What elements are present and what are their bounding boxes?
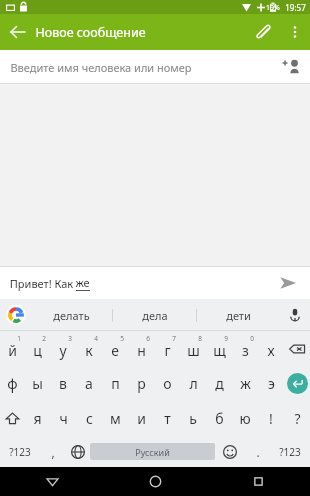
button[interactable]: у [50, 331, 76, 366]
button[interactable]: Введите имя человека или номер [0, 50, 310, 84]
button[interactable]: делать [30, 299, 112, 331]
staticText: у [59, 341, 67, 360]
button[interactable]: Home [104, 467, 207, 496]
button[interactable]: ш [180, 331, 206, 366]
button[interactable]: Back [0, 467, 104, 496]
button[interactable]: р [128, 366, 154, 401]
button[interactable]: Backspace [284, 331, 310, 366]
button[interactable]: Emoji [215, 436, 245, 467]
button[interactable]: я [25, 401, 50, 436]
button[interactable]: ?123 [270, 436, 310, 467]
button[interactable]: е [102, 331, 128, 366]
button[interactable]: дела [113, 299, 196, 331]
button[interactable]: ?123 [0, 436, 40, 467]
staticText: з [242, 341, 249, 360]
staticText: а [85, 374, 93, 393]
button[interactable]: Enter [284, 366, 310, 401]
button[interactable]: д [206, 366, 232, 401]
button[interactable]: щ [206, 331, 232, 366]
staticText: Новое сообщение [35, 24, 146, 41]
staticText: ц [33, 341, 42, 360]
staticText: н [137, 341, 146, 360]
button[interactable]: Google [6, 305, 26, 325]
staticText: 19% [266, 3, 280, 13]
staticText: к [85, 341, 93, 360]
button[interactable]: а [76, 366, 102, 401]
button[interactable]: Voice input [280, 299, 310, 331]
other: Add contact [280, 56, 302, 78]
staticText: т [164, 409, 171, 428]
staticText: х [267, 341, 275, 360]
button[interactable]: More options [280, 17, 310, 47]
staticText: 7 [172, 334, 176, 343]
button[interactable]: ы [25, 366, 50, 401]
button[interactable]: Attach [246, 15, 280, 49]
button[interactable]: , [40, 436, 65, 467]
staticText: Введите имя человека или номер [10, 60, 192, 75]
staticText: м [110, 409, 121, 428]
button[interactable]: з [232, 331, 258, 366]
button[interactable]: ч [50, 401, 76, 436]
button[interactable]: п [102, 366, 128, 401]
button[interactable]: Shift [0, 401, 25, 436]
staticText: 3 [68, 334, 72, 343]
staticText: я [33, 409, 42, 428]
staticText: , [51, 444, 55, 460]
staticText: ф [7, 374, 18, 393]
button[interactable]: ц [25, 331, 50, 366]
staticText: ? [294, 409, 301, 428]
button[interactable]: и [128, 401, 154, 436]
button[interactable]: б [206, 401, 232, 436]
staticText: в [59, 374, 67, 393]
button[interactable]: ю [232, 401, 258, 436]
staticText: делать [53, 308, 90, 323]
button[interactable]: . [245, 436, 270, 467]
staticText: 8 [198, 334, 202, 343]
button[interactable]: н [128, 331, 154, 366]
button[interactable]: ж [232, 366, 258, 401]
button[interactable]: г [154, 331, 180, 366]
button[interactable]: м [102, 401, 128, 436]
staticText: ?123 [279, 445, 301, 459]
staticText: ! [269, 409, 273, 428]
button[interactable]: х [258, 331, 284, 366]
staticText: ы [32, 374, 43, 393]
button[interactable]: ф [0, 366, 25, 401]
staticText: й [8, 341, 17, 360]
button[interactable]: с [76, 401, 102, 436]
staticText: Русский [135, 446, 170, 458]
staticText: ь [189, 409, 197, 428]
staticText: ?123 [9, 445, 31, 459]
staticText: 0 [250, 334, 254, 343]
button[interactable]: Русский [90, 443, 215, 460]
staticText: б [215, 409, 224, 428]
button[interactable]: Change language [65, 436, 90, 467]
button[interactable]: в [50, 366, 76, 401]
staticText: и [137, 409, 146, 428]
button[interactable]: ! [258, 401, 284, 436]
button[interactable]: Back [0, 14, 36, 50]
staticText: д [215, 374, 224, 393]
staticText: Привет! Как [8, 276, 75, 291]
button[interactable]: л [180, 366, 206, 401]
staticText: 2 [42, 334, 46, 343]
button[interactable]: й [0, 331, 25, 366]
button[interactable]: к [76, 331, 102, 366]
staticText: г [164, 341, 171, 360]
staticText: э [268, 374, 275, 393]
staticText: р [137, 374, 146, 393]
staticText: с [86, 409, 93, 428]
staticText: л [189, 374, 198, 393]
button[interactable]: дети [197, 299, 280, 331]
staticText: о [163, 374, 172, 393]
button[interactable]: Recents [207, 467, 310, 496]
button[interactable]: ? [284, 401, 310, 436]
button[interactable]: т [154, 401, 180, 436]
button[interactable]: о [154, 366, 180, 401]
staticText: 4 [94, 334, 98, 343]
button[interactable]: ь [180, 401, 206, 436]
staticText: ч [59, 409, 68, 428]
button[interactable]: Send [274, 269, 302, 297]
button[interactable]: э [258, 366, 284, 401]
staticText: 1 [17, 334, 21, 343]
